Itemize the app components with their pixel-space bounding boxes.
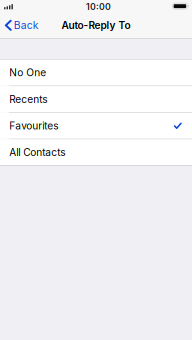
button[interactable]: Back bbox=[0, 16, 42, 35]
staticText: No One bbox=[9, 66, 46, 79]
staticText: Recents bbox=[9, 93, 47, 105]
staticText: Back bbox=[14, 19, 39, 32]
button[interactable]: Recents bbox=[0, 86, 192, 112]
staticText: 10:00 bbox=[86, 1, 111, 12]
staticText: All Contacts bbox=[9, 146, 65, 158]
button[interactable]: No One bbox=[0, 60, 192, 86]
button[interactable]: Favourites bbox=[0, 113, 192, 139]
staticText: Favourites bbox=[9, 120, 58, 132]
staticText: Auto-Reply To bbox=[61, 19, 130, 31]
button[interactable]: All Contacts bbox=[0, 139, 192, 165]
